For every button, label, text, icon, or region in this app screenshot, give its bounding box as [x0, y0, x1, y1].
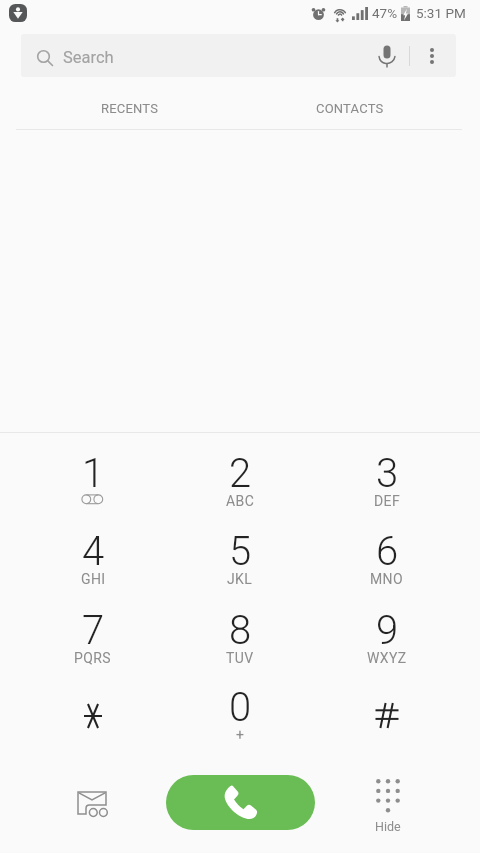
button[interactable]: More options [410, 34, 454, 77]
staticText: WXYZ [367, 650, 407, 666]
staticText: 9 [376, 607, 399, 654]
button[interactable]: Search [21, 34, 456, 77]
staticText: ABC [226, 493, 255, 509]
button[interactable]: 8 [167, 593, 313, 671]
button[interactable]: 1 [20, 436, 166, 514]
staticText: Search [63, 48, 114, 67]
button[interactable]: RECENTS [20, 87, 240, 129]
button[interactable]: CONTACTS [240, 87, 460, 129]
staticText: PQRS [74, 650, 112, 666]
staticText: TUV [226, 650, 254, 666]
staticText: 5 [229, 528, 252, 575]
staticText: MNO [370, 571, 404, 587]
staticText: Hide [375, 819, 401, 834]
staticText: 4 [82, 528, 105, 575]
staticText: 7 [82, 607, 105, 654]
button[interactable]: 5 [167, 514, 313, 592]
staticText: 5:31 PM [416, 5, 466, 21]
button[interactable]: 0 [167, 670, 313, 748]
staticText: JKL [227, 571, 253, 587]
staticText: 6 [376, 528, 399, 575]
button[interactable] [20, 670, 166, 748]
button[interactable]: 7 [20, 593, 166, 671]
staticText: 3 [376, 450, 399, 497]
staticText: 47% [372, 5, 398, 21]
button[interactable]: Call [166, 775, 315, 830]
staticText: 1 [82, 450, 105, 497]
button[interactable]: 4 [20, 514, 166, 592]
staticText: 2 [229, 450, 252, 497]
button[interactable]: 9 [314, 593, 460, 671]
staticText: GHI [81, 571, 106, 587]
staticText: CONTACTS [316, 101, 384, 116]
button[interactable]: Voicemail [45, 770, 140, 840]
button[interactable]: 3 [314, 436, 460, 514]
staticText: + [236, 727, 245, 743]
button[interactable]: Voice search [365, 34, 409, 77]
staticText: 8 [229, 607, 252, 654]
button[interactable]: Hide keypad [340, 770, 435, 842]
staticText: RECENTS [101, 101, 159, 116]
button[interactable]: 2 [167, 436, 313, 514]
staticText: DEF [374, 493, 401, 509]
staticText: 0 [229, 684, 252, 731]
button[interactable] [314, 670, 460, 748]
button[interactable]: 6 [314, 514, 460, 592]
